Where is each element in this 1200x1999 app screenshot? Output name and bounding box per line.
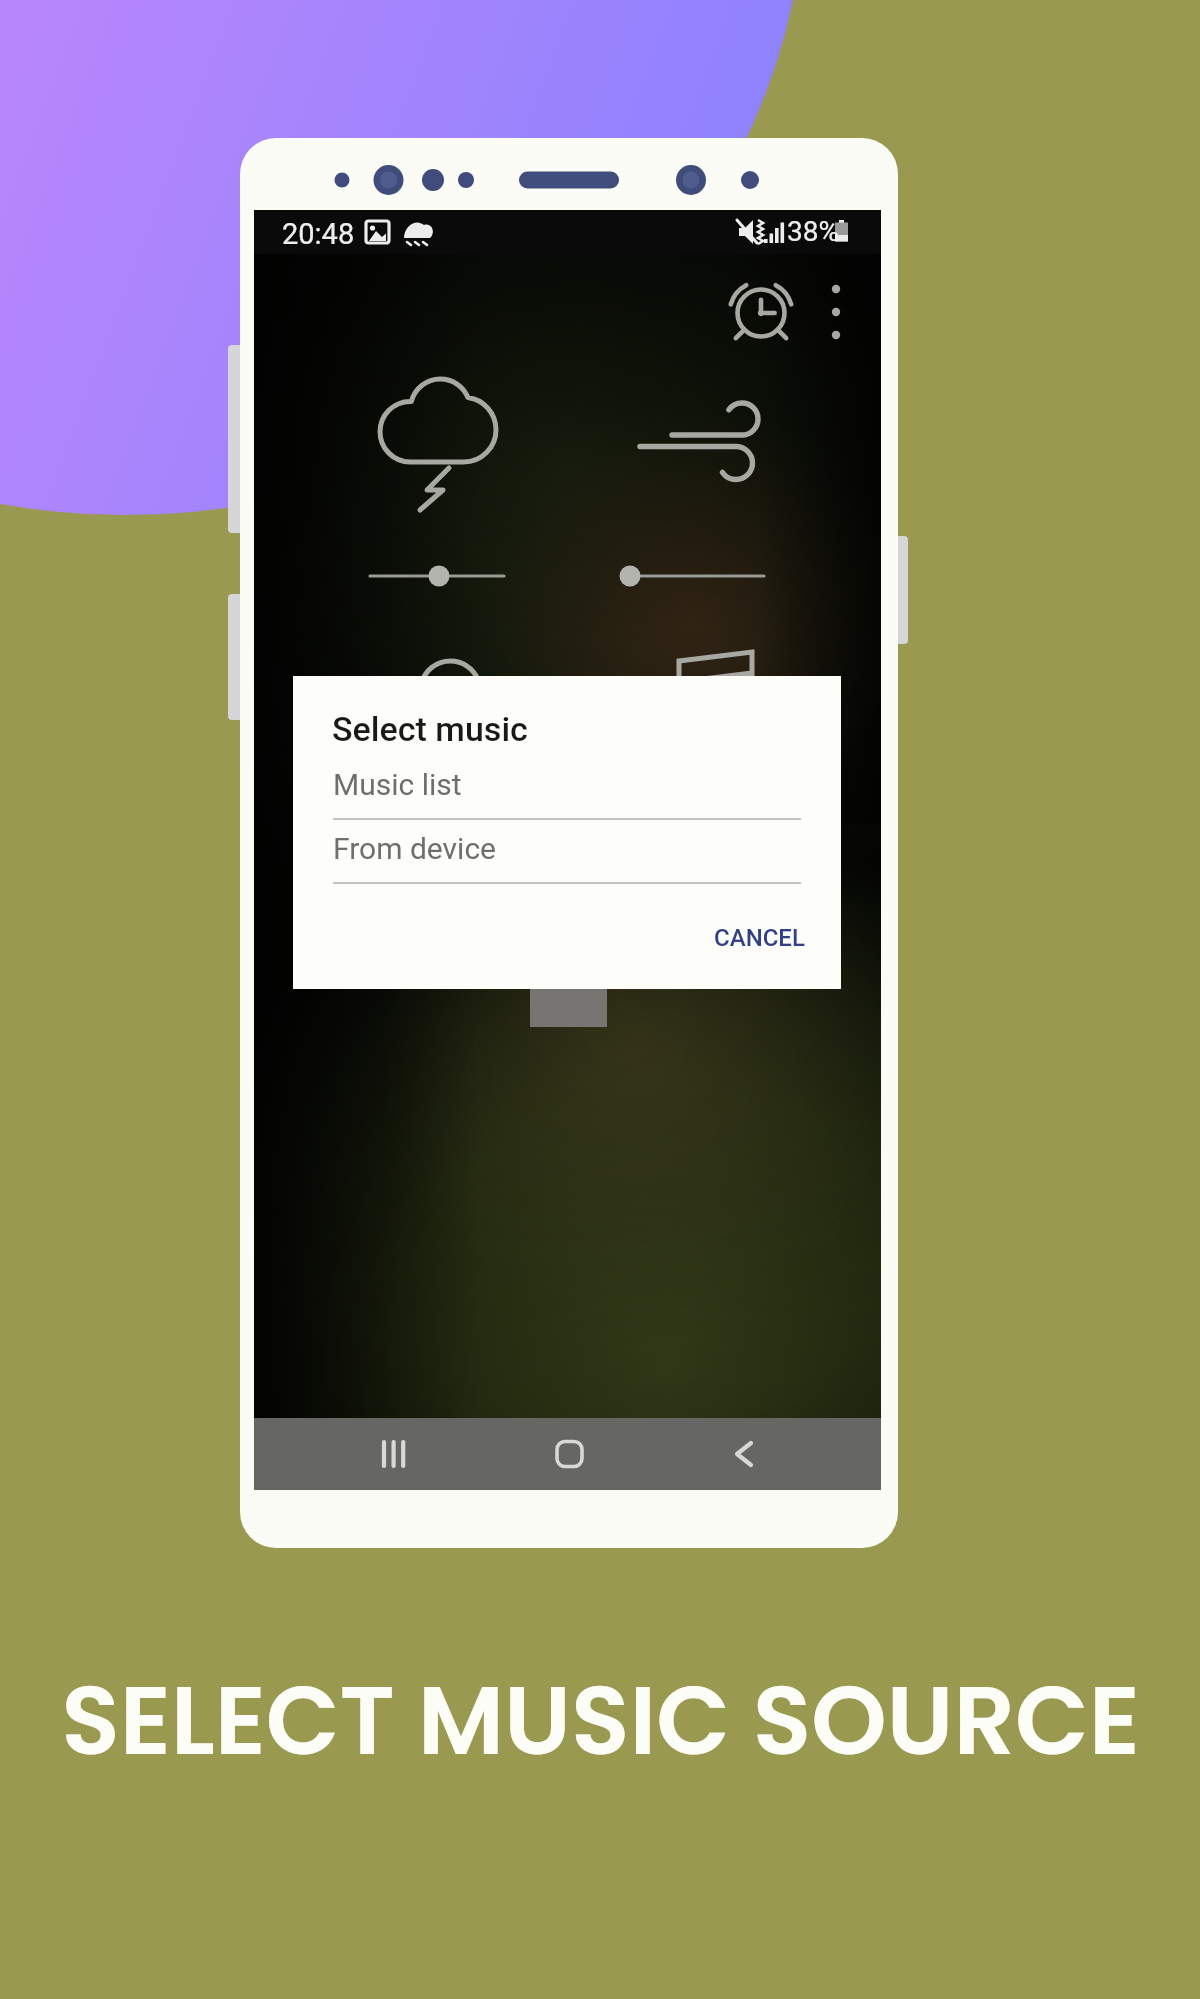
staticText: From device — [333, 831, 497, 866]
button[interactable]: Home — [535, 1420, 603, 1488]
button[interactable]: Recent apps — [348, 1420, 416, 1488]
staticText: 20:48 — [282, 217, 355, 251]
button[interactable]: From device — [293, 819, 841, 883]
staticText: CANCEL — [714, 924, 805, 952]
button[interactable]: CANCEL — [699, 910, 820, 966]
staticText: Select music — [332, 709, 528, 749]
staticText: SELECT MUSIC SOURCE — [61, 1653, 1140, 1787]
button[interactable]: Music list — [293, 755, 841, 819]
staticText: 38% — [787, 215, 839, 248]
button[interactable]: Back — [710, 1420, 778, 1488]
staticText: Music list — [333, 767, 462, 802]
